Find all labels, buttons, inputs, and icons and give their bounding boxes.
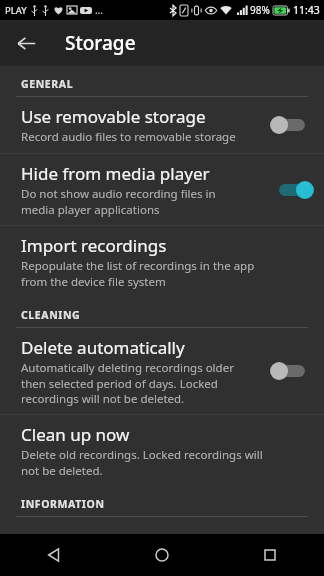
staticText: Do not show audio recording files in med… <box>21 186 216 217</box>
staticText: Storage <box>65 30 136 56</box>
staticText: Repopulate the list of recordings in the… <box>21 258 255 289</box>
button[interactable]: Use removable storage <box>0 97 324 153</box>
button[interactable]: Back <box>0 534 108 576</box>
staticText: 98% <box>250 3 270 17</box>
staticText: Clean up now <box>21 423 130 446</box>
staticText: Delete automatically <box>21 336 185 359</box>
staticText: GENERAL <box>21 77 74 91</box>
button[interactable]: Import recordings <box>0 226 324 297</box>
staticText: 11:43 <box>293 3 320 17</box>
button[interactable]: Delete automatically <box>0 328 324 414</box>
staticText: Use removable storage <box>21 105 206 128</box>
staticText: CLEANING <box>21 308 81 322</box>
staticText: Delete old recordings. Locked recordings… <box>21 447 263 478</box>
button[interactable]: Toggle off <box>272 111 312 139</box>
button[interactable]: Toggle on <box>272 176 312 204</box>
button[interactable]: Toggle off <box>272 357 312 385</box>
button[interactable]: Clean up now <box>0 415 324 486</box>
button[interactable]: Hide from media player <box>0 154 324 225</box>
staticText: Hide from media player <box>21 162 210 185</box>
staticText: INFORMATION <box>21 497 105 511</box>
staticText: PLAY <box>5 4 27 17</box>
staticText: … <box>95 3 103 17</box>
button[interactable]: Recent apps <box>216 534 324 576</box>
staticText: Automatically deleting recordings older … <box>21 360 234 406</box>
button[interactable]: Back <box>8 25 44 61</box>
button[interactable]: Home <box>108 534 216 576</box>
staticText: Record audio files to removable storage <box>21 129 236 145</box>
staticText: Import recordings <box>21 234 167 257</box>
